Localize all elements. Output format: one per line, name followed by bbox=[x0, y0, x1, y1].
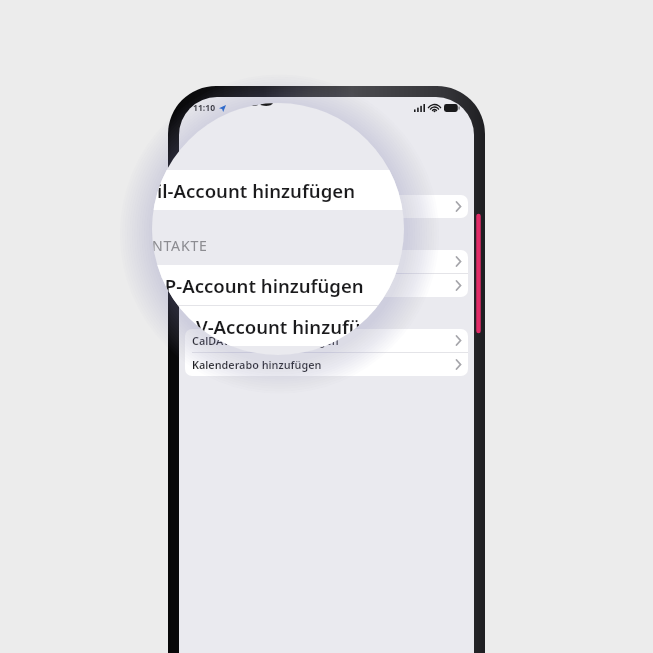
button[interactable]: Mail-Account hinzufügen bbox=[185, 195, 468, 218]
staticText: CalDAV-Account hinzufügen bbox=[192, 333, 339, 348]
staticText: LDAP-Account hinzufügen bbox=[129, 273, 364, 298]
staticText: Kalenderabo hinzufügen bbox=[192, 357, 322, 372]
staticText: MAIL bbox=[193, 178, 215, 189]
staticText: MAIL bbox=[131, 141, 169, 160]
staticText: Kalenderabo hinzufügen bbox=[129, 450, 352, 475]
staticText: Mail-Account hinzufügen bbox=[192, 199, 324, 214]
staticText: Mail-Account hinzufügen bbox=[129, 178, 355, 203]
staticText: CardDAV-Account hinzufügen bbox=[129, 314, 396, 339]
button[interactable]: LDAP-Account hinzufügen bbox=[185, 250, 468, 273]
button[interactable]: Kalenderabo hinzufügen bbox=[185, 353, 468, 376]
staticText: KALENDER bbox=[193, 312, 238, 323]
staticText: KONTAKTE bbox=[193, 233, 238, 244]
staticText: KONTAKTE bbox=[131, 236, 208, 255]
other: Power button bbox=[0, 0, 653, 653]
button[interactable]: CardDAV-Account hinzufügen bbox=[117, 306, 604, 346]
staticText: Accounts bbox=[129, 72, 275, 115]
button[interactable]: Kalenderabo hinzufügen bbox=[117, 442, 604, 482]
staticText: LDAP-Account hinzufügen bbox=[192, 254, 329, 269]
button[interactable]: Mail-Account hinzufügen bbox=[117, 170, 604, 210]
button[interactable]: LDAP-Account hinzufügen bbox=[117, 265, 604, 305]
staticText: 11:10 bbox=[193, 102, 216, 114]
button[interactable]: CardDAV-Account hinzufügen bbox=[185, 274, 468, 297]
staticText: CardDAV-Account hinzufügen bbox=[192, 278, 347, 293]
staticText: CalDAV-Account hinzufügen bbox=[129, 409, 381, 434]
staticText: KALENDER bbox=[131, 372, 208, 391]
button[interactable]: CalDAV-Account hinzufügen bbox=[185, 329, 468, 352]
button[interactable]: CalDAV-Account hinzufügen bbox=[117, 401, 604, 441]
